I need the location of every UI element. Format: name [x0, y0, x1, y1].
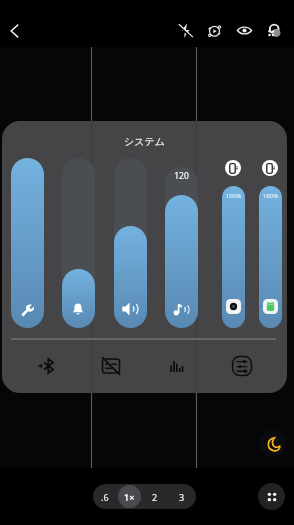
button[interactable]: Preview	[230, 16, 258, 44]
button[interactable]: System	[263, 299, 278, 314]
staticText: システム	[2, 135, 287, 148]
button[interactable]: More options	[258, 483, 285, 510]
staticText: 120	[165, 170, 198, 182]
button[interactable]: .6	[93, 484, 117, 509]
button[interactable]: 3	[168, 484, 196, 509]
button[interactable]: Night mode	[259, 430, 286, 457]
button[interactable]: Equalizer	[160, 350, 192, 382]
button[interactable]: 2	[142, 484, 168, 509]
button[interactable]: Back	[1, 17, 29, 45]
button[interactable]: 1×	[117, 484, 142, 509]
staticText: 2	[152, 491, 158, 503]
button[interactable]: Camera	[226, 299, 241, 314]
staticText: 1×	[124, 491, 135, 503]
button[interactable]: Cast to device	[225, 160, 241, 176]
button[interactable]: Sound settings	[226, 350, 258, 382]
staticText: .6	[101, 491, 109, 503]
staticText: 100%	[259, 192, 282, 200]
button[interactable]: More settings	[260, 16, 288, 44]
button[interactable]: Motion photo	[200, 16, 228, 44]
button[interactable]: Cast to device	[262, 160, 278, 176]
staticText: 100%	[222, 192, 245, 200]
button[interactable]: Flash off	[171, 16, 199, 44]
button[interactable]: Bluetooth	[30, 350, 62, 382]
button[interactable]: Captions off	[95, 350, 127, 382]
staticText: 3	[179, 491, 185, 503]
